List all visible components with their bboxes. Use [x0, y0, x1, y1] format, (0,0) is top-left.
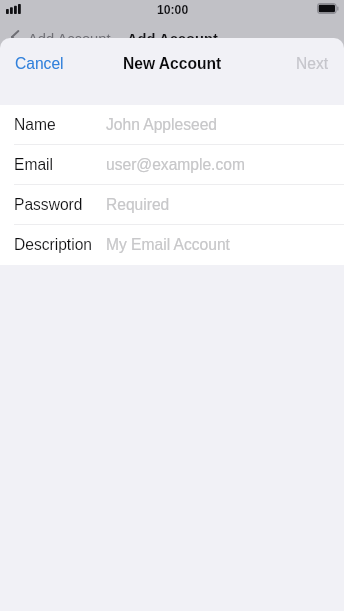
staticText: Add Account — [127, 31, 218, 38]
staticText: Password — [14, 196, 83, 213]
staticText: John Appleseed — [106, 116, 217, 133]
staticText: My Email Account — [106, 236, 230, 253]
button[interactable]: Name — [0, 105, 344, 145]
staticText: Add Account — [28, 31, 111, 38]
button[interactable]: Cancel — [0, 44, 79, 83]
staticText: Cancel — [15, 55, 64, 72]
staticText: 10:00 — [157, 3, 189, 17]
staticText: user@example.com — [106, 156, 245, 173]
button[interactable]: Back — [0, 22, 120, 38]
staticText: Description — [14, 236, 92, 253]
button[interactable]: Password — [0, 185, 344, 225]
staticText: Next — [296, 55, 329, 72]
other: Battery full — [317, 3, 340, 14]
other: Cellular signal — [6, 4, 22, 14]
staticText: New Account — [123, 55, 222, 72]
staticText: Required — [106, 196, 170, 213]
button[interactable]: Email — [0, 145, 344, 185]
staticText: Email — [14, 156, 53, 173]
button[interactable]: Next — [281, 44, 344, 83]
staticText: Name — [14, 116, 56, 133]
other: Back — [11, 30, 19, 38]
button[interactable]: Description — [0, 225, 344, 265]
